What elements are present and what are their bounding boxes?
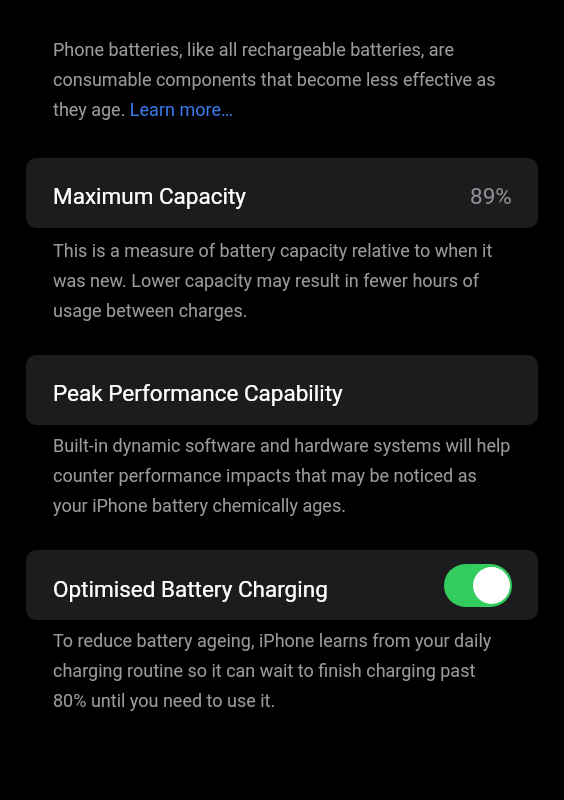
staticText: Maximum Capacity <box>53 183 246 209</box>
staticText: To reduce battery ageing, iPhone learns … <box>53 623 513 713</box>
staticText: 89% <box>470 183 512 209</box>
staticText: Phone batteries, like all rechargeable b… <box>53 32 513 122</box>
staticText: Built-in dynamic software and hardware s… <box>53 428 513 518</box>
button[interactable]: Peak Performance Capability <box>26 355 538 425</box>
button[interactable]: Optimised Battery Charging <box>26 550 538 620</box>
button[interactable]: Optimised Battery Charging toggle <box>444 564 512 607</box>
staticText: Optimised Battery Charging <box>53 576 328 602</box>
staticText: Peak Performance Capability <box>53 380 343 406</box>
staticText: This is a measure of battery capacity re… <box>53 233 513 323</box>
button[interactable]: Learn more <box>131 98 235 122</box>
button[interactable]: Maximum Capacity <box>26 158 538 228</box>
